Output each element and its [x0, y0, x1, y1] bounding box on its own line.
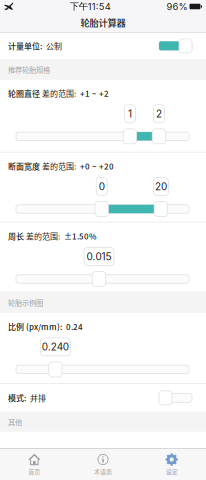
- staticText: 差的范围:: [40, 87, 76, 99]
- staticText: 设定: [166, 467, 178, 476]
- staticText: 术语表: [94, 467, 112, 476]
- staticText: 轮胎计算器: [80, 16, 125, 29]
- staticText: 0.015: [86, 250, 111, 263]
- staticText: 首页: [28, 467, 40, 476]
- staticText: 轮胎示例图: [8, 297, 43, 307]
- staticText: +1 ~ +2: [76, 87, 109, 99]
- button[interactable]: Switch on: [159, 39, 192, 53]
- staticText: 轮圈直径: [8, 87, 40, 99]
- staticText: 并排: [26, 392, 46, 404]
- button[interactable]: 设定: [137, 449, 206, 480]
- staticText: 其他: [8, 416, 22, 427]
- staticText: 计量单位:: [8, 40, 42, 52]
- staticText: 0: [99, 180, 105, 193]
- staticText: 断面宽度: [8, 160, 40, 172]
- staticText: 2: [156, 108, 162, 120]
- staticText: 模式:: [8, 392, 26, 404]
- staticText: 差的范围:: [24, 230, 60, 242]
- staticText: 下午11:54: [70, 1, 111, 12]
- staticText: 周长: [8, 230, 24, 242]
- staticText: 20: [155, 180, 167, 193]
- button[interactable]: 模式:: [0, 384, 206, 412]
- staticText: +0 ~ +20: [76, 160, 114, 172]
- staticText: 0.240: [42, 341, 69, 353]
- staticText: 0.24: [62, 321, 83, 332]
- staticText: 比例 (px/mm):: [8, 321, 62, 332]
- button[interactable]: 首页: [0, 449, 69, 480]
- staticText: 推荐轮胎规格: [8, 64, 50, 75]
- staticText: 公制: [42, 40, 62, 52]
- staticText: ±1.50%: [60, 230, 97, 242]
- button[interactable]: 术语表: [69, 449, 137, 480]
- button[interactable]: Switch off: [159, 391, 192, 405]
- staticText: 96%: [166, 1, 187, 12]
- button[interactable]: 计量单位:: [0, 33, 206, 59]
- staticText: 1: [128, 108, 132, 120]
- staticText: 差的范围:: [40, 160, 76, 172]
